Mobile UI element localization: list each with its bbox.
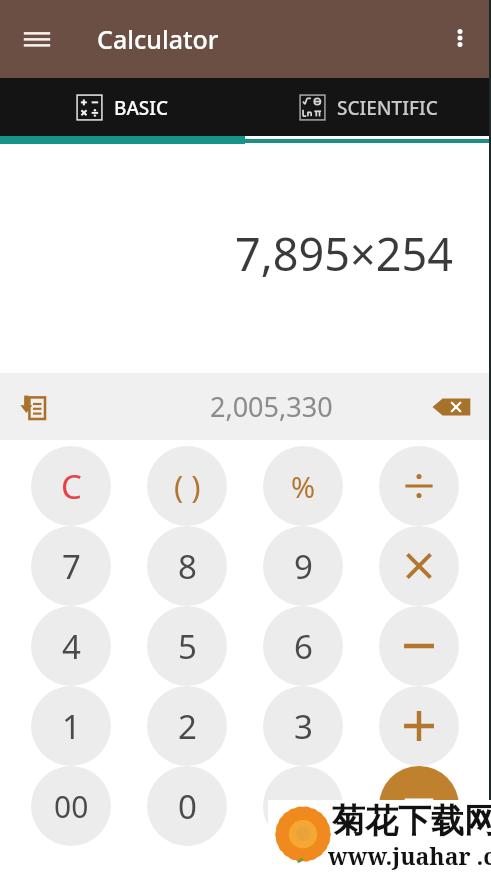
button[interactable]: 1: [31, 686, 111, 766]
button[interactable]: .: [263, 766, 343, 846]
staticText: ( ): [174, 465, 201, 507]
staticText: 菊花下载网: [332, 800, 491, 842]
button[interactable]: More options: [438, 16, 482, 60]
button[interactable]: ( ): [147, 446, 227, 526]
staticText: 2,005,330: [210, 388, 333, 425]
staticText: 00: [54, 786, 89, 827]
button[interactable]: 0: [147, 766, 227, 846]
staticText: 5: [178, 624, 197, 669]
button[interactable]: 00: [31, 766, 111, 846]
button[interactable]: 7: [31, 526, 111, 606]
staticText: 2: [178, 704, 197, 749]
button[interactable]: Multiply: [379, 526, 459, 606]
button[interactable]: 4: [31, 606, 111, 686]
staticText: 7: [62, 544, 81, 589]
button[interactable]: SCIENTIFIC: [245, 78, 491, 136]
staticText: www.juahar .com: [328, 840, 491, 871]
staticText: SCIENTIFIC: [337, 95, 438, 121]
staticText: 1: [62, 704, 81, 749]
button[interactable]: 8: [147, 526, 227, 606]
staticText: 0: [178, 784, 197, 829]
staticText: C: [61, 464, 82, 509]
staticText: 8: [178, 544, 197, 589]
button[interactable]: 9: [263, 526, 343, 606]
button[interactable]: 2: [147, 686, 227, 766]
staticText: .: [299, 784, 308, 829]
button[interactable]: Minus: [379, 606, 459, 686]
button[interactable]: BASIC: [0, 78, 245, 136]
button[interactable]: 5: [147, 606, 227, 686]
button[interactable]: Equals: [379, 766, 459, 846]
button[interactable]: 6: [263, 606, 343, 686]
staticText: 4: [62, 624, 81, 669]
staticText: 3: [294, 704, 313, 749]
staticText: BASIC: [114, 95, 169, 121]
button[interactable]: 3: [263, 686, 343, 766]
button[interactable]: %: [263, 446, 343, 526]
staticText: 7,895×254: [235, 223, 453, 284]
button[interactable]: Save to history: [10, 384, 56, 430]
staticText: 9: [294, 544, 313, 589]
button[interactable]: Plus: [379, 686, 459, 766]
button[interactable]: Open navigation menu: [14, 16, 60, 62]
button[interactable]: Divide: [379, 446, 459, 526]
staticText: %: [291, 467, 316, 506]
staticText: Calculator: [97, 22, 219, 56]
staticText: 6: [294, 624, 313, 669]
button[interactable]: C: [31, 446, 111, 526]
button[interactable]: Backspace: [429, 385, 473, 429]
